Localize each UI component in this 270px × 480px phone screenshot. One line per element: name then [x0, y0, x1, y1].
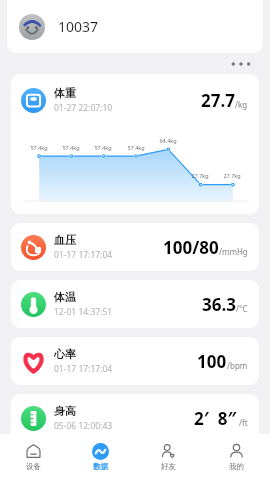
other: Devices	[25, 443, 42, 460]
staticText: 心率	[54, 347, 76, 361]
staticText: /°C	[236, 303, 248, 314]
staticText: /mmHg	[219, 246, 248, 257]
staticText: 设备	[26, 462, 41, 471]
button[interactable]: 血压	[11, 223, 259, 271]
staticText: 64.4kg	[159, 137, 177, 144]
staticText: 57.4kg	[94, 144, 112, 151]
button[interactable]: 10037	[7, 0, 263, 53]
button[interactable]: More options	[228, 55, 254, 73]
staticText: 36.3	[202, 293, 236, 316]
button[interactable]: Data	[67, 434, 134, 480]
staticText: 100/80	[163, 236, 219, 259]
staticText: 血压	[54, 233, 76, 247]
staticText: 我的	[229, 462, 244, 471]
staticText: 27.7	[201, 89, 235, 112]
staticText: 体温	[54, 290, 76, 304]
staticText: 27.7kg	[191, 172, 209, 179]
staticText: 57.4kg	[127, 144, 145, 151]
button[interactable]: 身高	[11, 394, 259, 442]
staticText: 27.7kg	[223, 172, 241, 179]
staticText: 100	[197, 350, 227, 373]
staticText: 好友	[161, 462, 176, 471]
button[interactable]: 心率	[11, 337, 259, 385]
button[interactable]: Friends	[134, 434, 202, 480]
staticText: 01-17 17:17:04	[54, 249, 113, 261]
staticText: 01-27 22:07:10	[54, 102, 113, 114]
button[interactable]: Devices	[0, 434, 67, 480]
staticText: 57.4kg	[62, 144, 80, 151]
button[interactable]: 体温	[11, 280, 259, 328]
staticText: 05-06 12:00:43	[54, 420, 113, 432]
staticText: 体重	[54, 86, 76, 100]
other: Friends	[160, 443, 177, 460]
button[interactable]: Profile	[202, 434, 270, 480]
staticText: 01-17 17:17:04	[54, 363, 113, 375]
staticText: /bpm	[227, 360, 248, 371]
staticText: 57.4kg	[30, 144, 48, 151]
staticText: 12-01 14:37:51	[54, 306, 113, 318]
other: Profile	[228, 443, 245, 460]
button[interactable]: 体重	[11, 74, 259, 214]
staticText: /kg	[235, 99, 248, 110]
staticText: 数据	[93, 462, 108, 471]
staticText: /ft	[237, 417, 248, 428]
staticText: 2′ 8″	[194, 407, 237, 430]
other: Data	[92, 443, 109, 460]
staticText: 10037	[58, 17, 99, 36]
staticText: 身高	[54, 404, 76, 418]
